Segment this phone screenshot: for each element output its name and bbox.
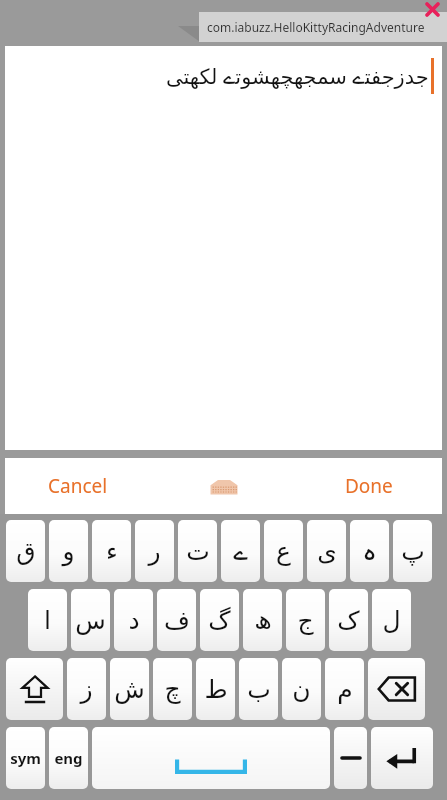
button[interactable]: Shift: [6, 658, 63, 720]
button[interactable]: ن: [282, 658, 321, 720]
button[interactable]: Cancel: [5, 458, 151, 514]
staticText: جدزجفتے سمجھچھشوتے لکھتی: [166, 62, 429, 91]
button[interactable]: sym: [6, 727, 45, 789]
staticText: ھ: [254, 606, 272, 635]
button[interactable]: جدزجفتے سمجھچھشوتے لکھتی: [5, 46, 442, 450]
staticText: ت: [186, 537, 210, 566]
button[interactable]: Keyboard: [151, 458, 296, 514]
staticText: ے: [233, 537, 248, 566]
staticText: ن: [292, 675, 311, 704]
button[interactable]: ی: [307, 520, 346, 582]
button[interactable]: Backspace: [368, 658, 425, 720]
staticText: ز: [80, 675, 93, 704]
staticText: ل: [382, 606, 401, 635]
button[interactable]: Space: [92, 727, 330, 789]
button[interactable]: ا: [28, 589, 67, 651]
button[interactable]: eng: [49, 727, 88, 789]
button[interactable]: پ: [393, 520, 432, 582]
staticText: ق: [16, 537, 36, 566]
staticText: ع: [276, 537, 291, 566]
staticText: ب: [247, 675, 271, 704]
button[interactable]: ب: [239, 658, 278, 720]
staticText: ف: [164, 606, 190, 635]
staticText: sym: [10, 748, 41, 768]
button[interactable]: ہ: [350, 520, 389, 582]
staticText: م: [337, 675, 353, 704]
staticText: پ: [401, 537, 425, 566]
button[interactable]: ج: [286, 589, 325, 651]
button[interactable]: ھ: [243, 589, 282, 651]
staticText: eng: [54, 748, 83, 768]
button[interactable]: Close: [424, 1, 440, 17]
button[interactable]: com.iabuzz.HelloKittyRacingAdventure: [199, 12, 447, 42]
staticText: و: [62, 537, 75, 566]
staticText: ی: [317, 537, 337, 566]
staticText: ہ: [362, 537, 377, 566]
button[interactable]: م: [325, 658, 364, 720]
staticText: ا: [44, 606, 51, 635]
button[interactable]: ء: [92, 520, 131, 582]
button[interactable]: ر: [135, 520, 174, 582]
button[interactable]: ف: [157, 589, 196, 651]
button[interactable]: Enter: [371, 727, 433, 789]
button[interactable]: و: [49, 520, 88, 582]
button[interactable]: س: [71, 589, 110, 651]
staticText: ر: [148, 537, 161, 566]
button[interactable]: ت: [178, 520, 217, 582]
button[interactable]: ش: [110, 658, 149, 720]
staticText: س: [75, 606, 106, 635]
staticText: ط: [204, 675, 228, 704]
button[interactable]: گ: [200, 589, 239, 651]
button[interactable]: چ: [153, 658, 192, 720]
staticText: ج: [297, 606, 314, 635]
staticText: Done: [345, 473, 393, 499]
button[interactable]: ز: [67, 658, 106, 720]
button[interactable]: ط: [196, 658, 235, 720]
staticText: چ: [164, 675, 181, 704]
staticText: د: [128, 606, 140, 635]
button[interactable]: ل: [372, 589, 411, 651]
staticText: Cancel: [48, 473, 108, 499]
button[interactable]: ک: [329, 589, 368, 651]
staticText: گ: [208, 606, 231, 635]
button[interactable]: ع: [264, 520, 303, 582]
button[interactable]: Done: [296, 458, 442, 514]
button[interactable]: د: [114, 589, 153, 651]
button[interactable]: ے: [221, 520, 260, 582]
staticText: com.iabuzz.HelloKittyRacingAdventure: [207, 19, 425, 35]
staticText: ش: [114, 675, 145, 704]
staticText: ک: [337, 606, 360, 635]
button[interactable]: ق: [6, 520, 45, 582]
button[interactable]: Dash: [334, 727, 367, 789]
staticText: ء: [106, 537, 118, 566]
